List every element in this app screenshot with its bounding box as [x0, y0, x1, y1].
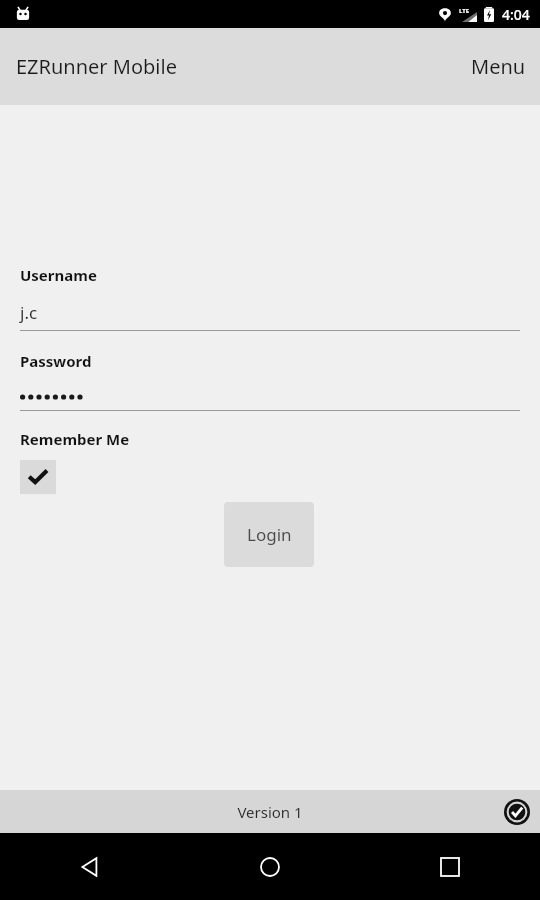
staticText: Login — [247, 523, 292, 546]
button[interactable]: Recent apps — [360, 833, 540, 900]
button[interactable]: Status OK — [502, 797, 532, 827]
staticText: Version 1 — [237, 802, 303, 822]
staticText: Menu — [471, 53, 526, 80]
staticText: EZRunner Mobile — [16, 53, 177, 80]
button[interactable]: Remember Me checkbox, checked — [20, 460, 56, 494]
staticText: Password — [20, 351, 92, 371]
button[interactable]: Back — [0, 833, 180, 900]
staticText: j.c — [20, 301, 38, 324]
button[interactable]: Login — [224, 502, 314, 567]
staticText: Username — [20, 265, 97, 285]
button[interactable] — [0, 387, 540, 411]
button[interactable]: j.c — [0, 301, 540, 331]
button[interactable]: Home — [180, 833, 360, 900]
button[interactable]: Menu — [457, 43, 540, 90]
staticText: Remember Me — [20, 429, 130, 449]
staticText: 4:04 — [502, 5, 530, 24]
staticText: LTE — [459, 7, 470, 15]
